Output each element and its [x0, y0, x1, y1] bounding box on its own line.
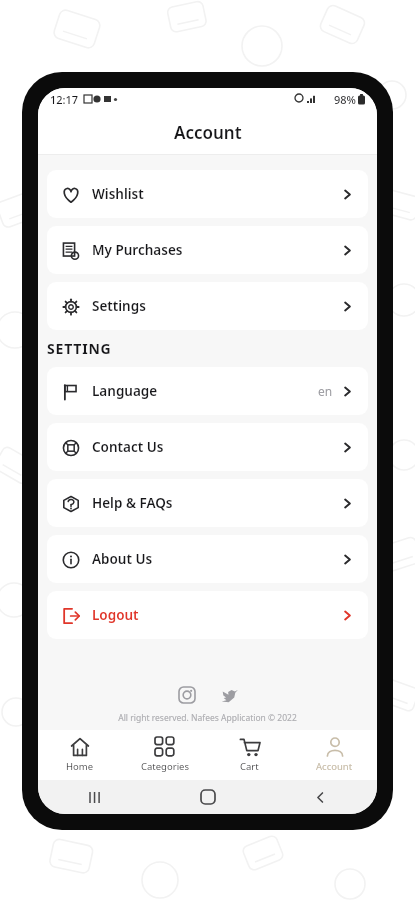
staticText: My Purchases: [92, 241, 183, 259]
staticText: en: [318, 383, 333, 399]
button[interactable]: About Us: [47, 535, 368, 583]
staticText: Settings: [92, 297, 146, 315]
staticText: Contact Us: [92, 438, 164, 456]
staticText: Account: [316, 760, 353, 773]
button[interactable]: Home: [38, 730, 122, 780]
button[interactable]: Cart: [207, 730, 292, 780]
staticText: 98%: [334, 92, 356, 107]
staticText: 12:17: [50, 92, 79, 107]
button[interactable]: Wishlist: [47, 170, 368, 218]
button[interactable]: Account: [292, 730, 377, 780]
staticText: Cart: [240, 760, 259, 773]
button[interactable]: Twitter: [216, 682, 242, 708]
button[interactable]: Logout: [47, 591, 368, 639]
staticText: Help & FAQs: [92, 494, 173, 512]
staticText: All right reserved. Nafees Application ©…: [118, 712, 297, 724]
staticText: SETTING: [47, 339, 112, 358]
button[interactable]: Home: [151, 780, 264, 814]
button[interactable]: Settings: [47, 282, 368, 330]
button[interactable]: Help & FAQs: [47, 479, 368, 527]
button[interactable]: Instagram: [174, 682, 200, 708]
staticText: Categories: [141, 760, 189, 773]
button[interactable]: Back: [264, 780, 377, 814]
staticText: Language: [92, 382, 158, 400]
staticText: About Us: [92, 550, 153, 568]
staticText: Logout: [92, 606, 139, 624]
staticText: Wishlist: [92, 185, 144, 203]
button[interactable]: My Purchases: [47, 226, 368, 274]
button[interactable]: Contact Us: [47, 423, 368, 471]
staticText: Account: [174, 121, 242, 144]
button[interactable]: Recents: [38, 780, 151, 814]
button[interactable]: Categories: [122, 730, 207, 780]
staticText: Home: [66, 760, 94, 773]
button[interactable]: Language: [47, 367, 368, 415]
